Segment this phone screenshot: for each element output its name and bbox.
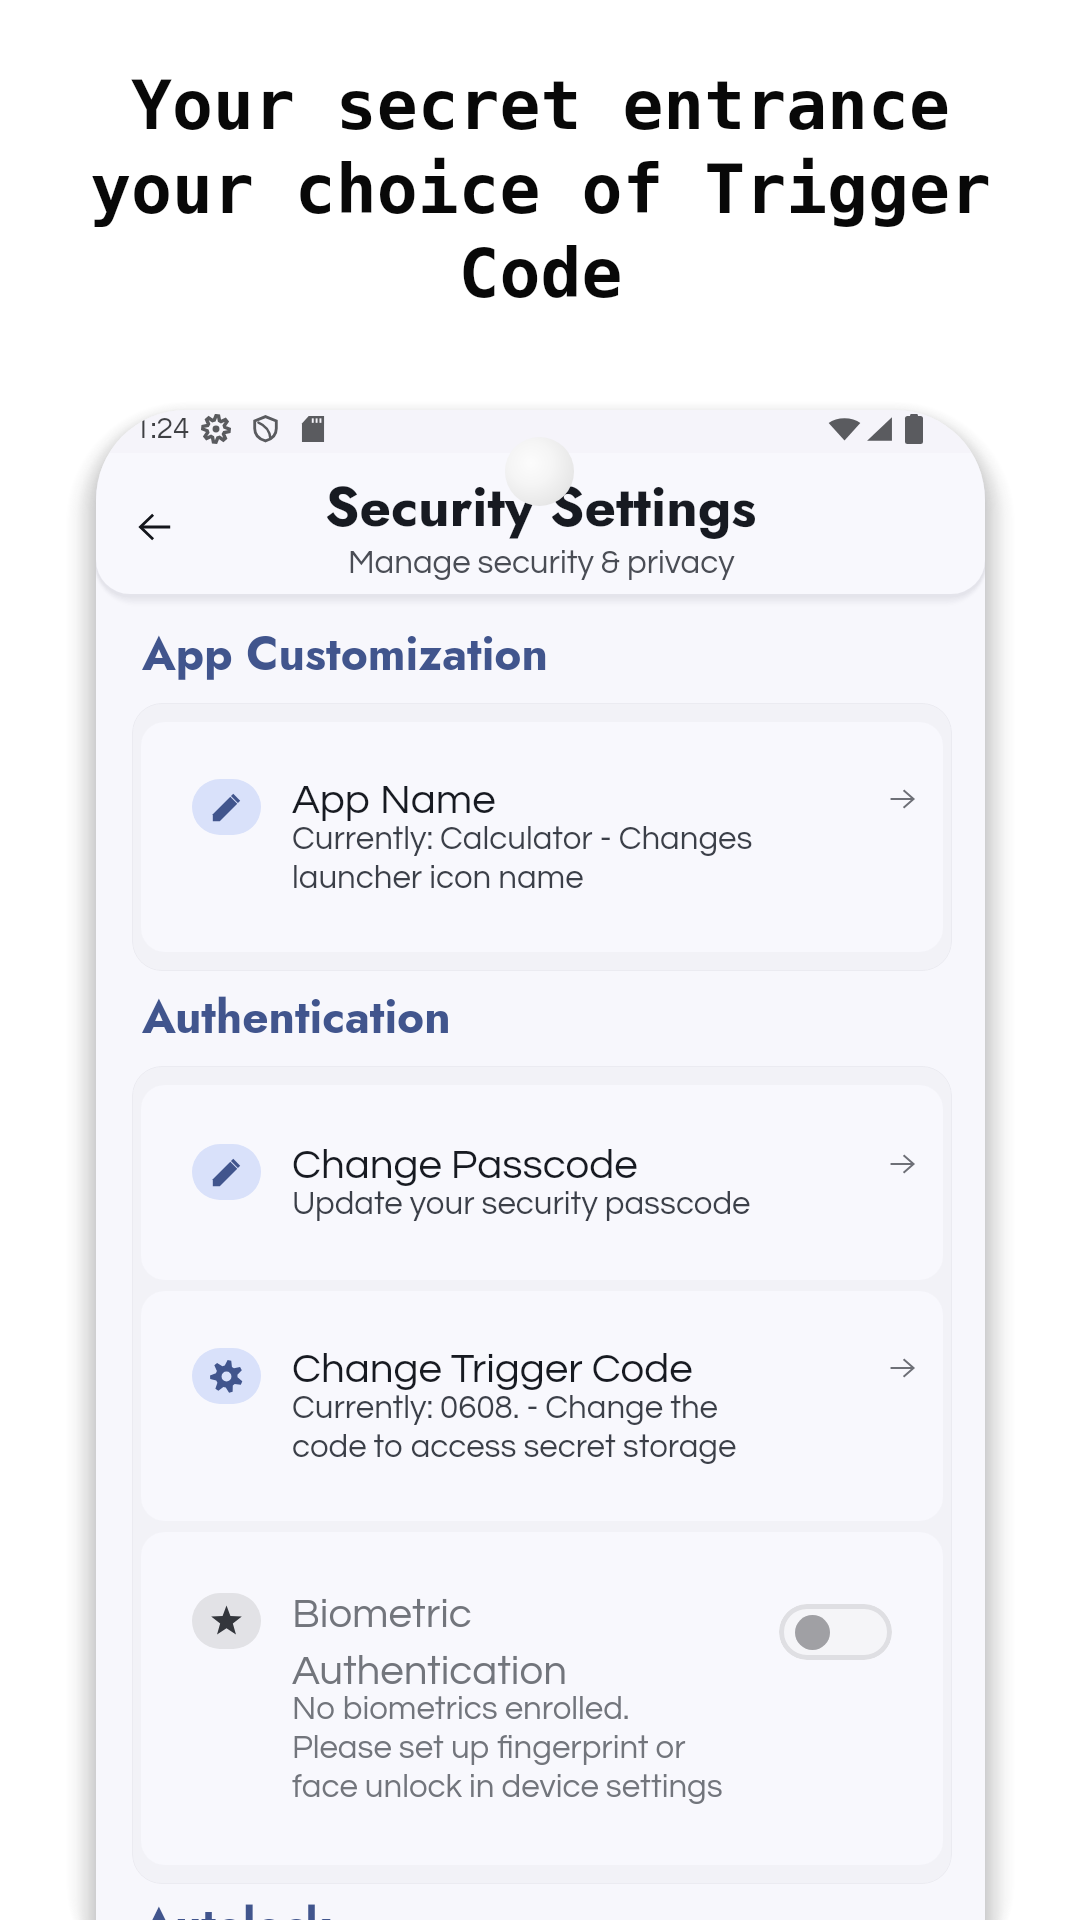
- staticText: Your secret entrance your choice of Trig…: [90, 66, 991, 313]
- staticText: App Customization: [142, 621, 548, 687]
- staticText: Biometric Authentication: [292, 1593, 567, 1692]
- staticText: Change Passcode: [292, 1144, 638, 1187]
- button[interactable]: Back: [125, 497, 185, 557]
- staticText: Autolock: [142, 1892, 332, 1920]
- staticText: Change Trigger Code: [292, 1348, 693, 1391]
- staticText: Authentication: [142, 984, 451, 1050]
- staticText: App Name: [292, 779, 496, 822]
- staticText: Currently: Calculator - Changes launcher…: [292, 822, 753, 895]
- button[interactable]: Change Trigger Code: [141, 1291, 943, 1521]
- button[interactable]: Biometric Authentication toggle: [779, 1604, 892, 1660]
- button[interactable]: App Name: [141, 722, 943, 952]
- staticText: Manage security & privacy: [348, 546, 735, 580]
- staticText: Currently: 0608. - Change the code to ac…: [292, 1391, 737, 1464]
- button[interactable]: Open: [878, 1348, 926, 1404]
- staticText: Security Settings: [325, 467, 757, 546]
- staticText: No biometrics enrolled. Please set up fi…: [292, 1692, 723, 1804]
- staticText: Update your security passcode: [292, 1187, 751, 1221]
- button[interactable]: Open: [878, 1144, 926, 1200]
- button[interactable]: Biometric Authentication: [141, 1532, 943, 1865]
- button[interactable]: Open: [878, 779, 926, 835]
- button[interactable]: Change Passcode: [141, 1085, 943, 1280]
- staticText: 1:24: [134, 413, 190, 444]
